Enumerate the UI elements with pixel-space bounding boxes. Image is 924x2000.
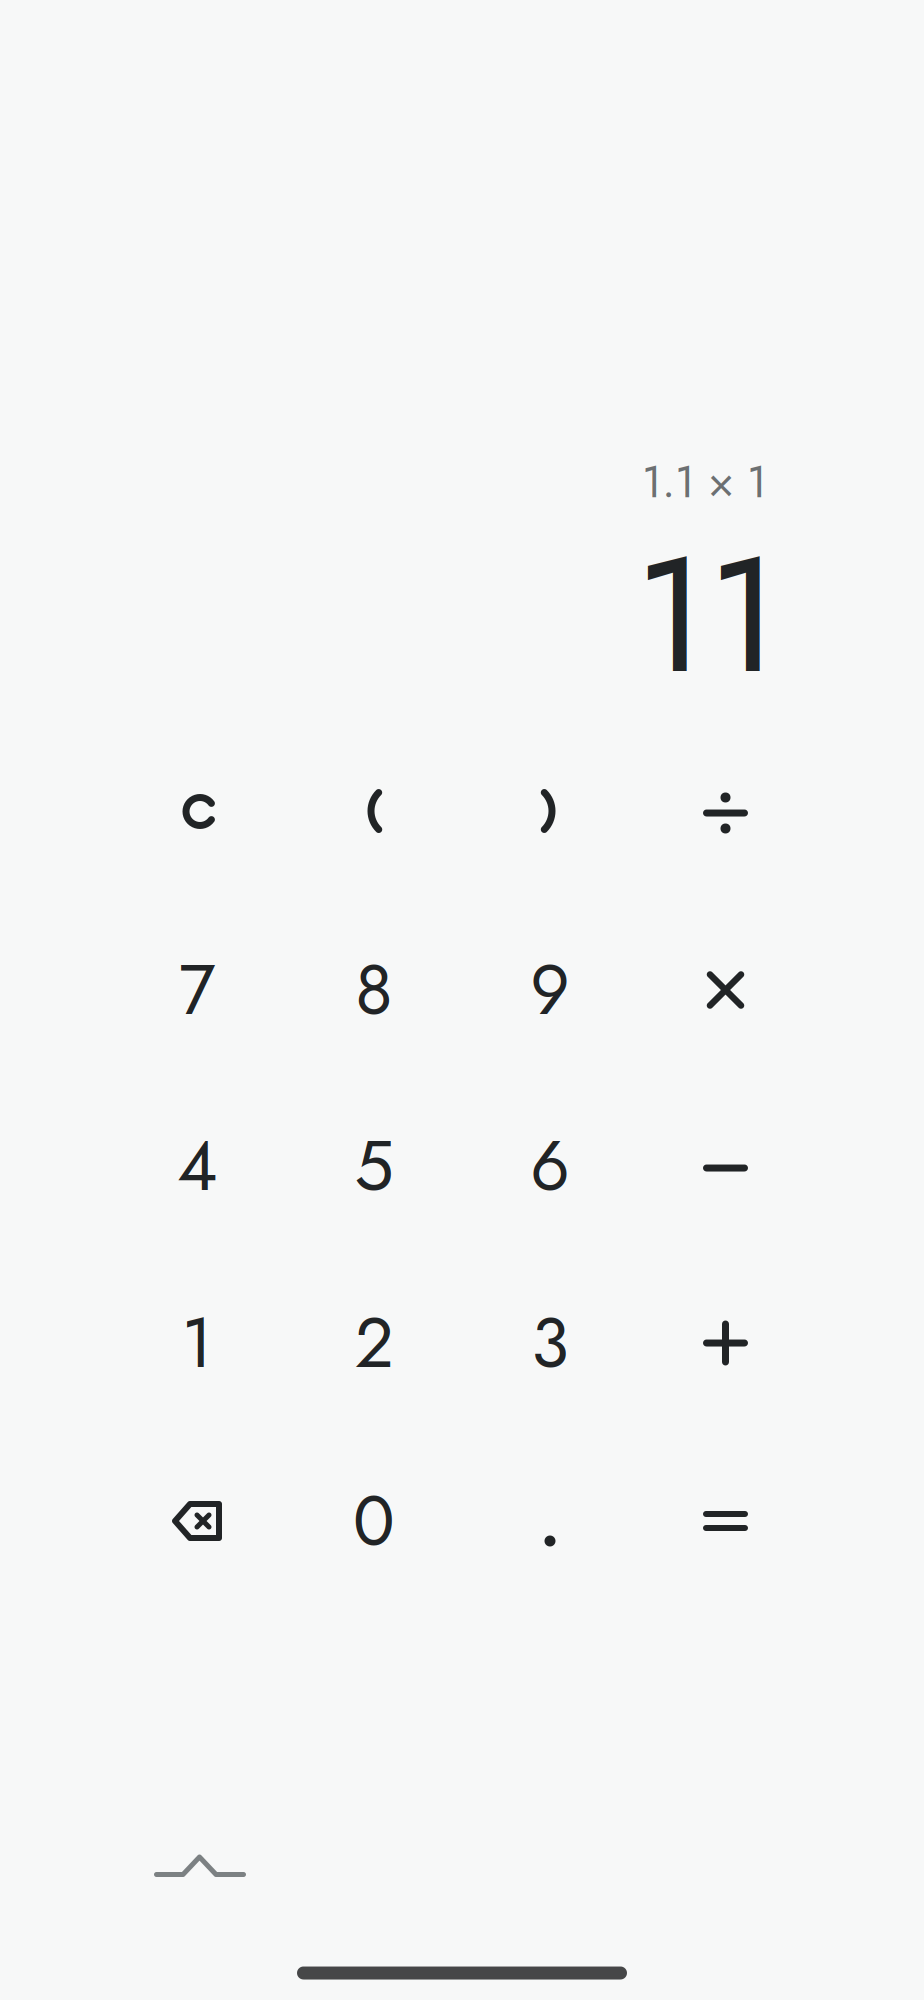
staticText: 3 xyxy=(531,1293,569,1393)
button[interactable]: 6 xyxy=(462,1078,638,1254)
staticText: 7 xyxy=(179,940,215,1040)
button[interactable]: 8 xyxy=(286,902,462,1078)
button[interactable]: Open parenthesis xyxy=(286,723,462,899)
button[interactable]: Decimal point xyxy=(462,1433,638,1609)
staticText: 0 xyxy=(353,1471,395,1571)
staticText: 2 xyxy=(354,1293,393,1393)
button[interactable]: Divide xyxy=(637,723,813,899)
button[interactable]: Clear xyxy=(109,723,285,899)
button[interactable]: Close parenthesis xyxy=(462,723,638,899)
staticText: 1.1 × 1 xyxy=(642,450,767,514)
button[interactable]: Add xyxy=(637,1255,813,1431)
staticText: 4 xyxy=(177,1116,217,1216)
staticText: 5 xyxy=(354,1116,393,1216)
staticText: 8 xyxy=(355,940,393,1040)
button[interactable]: Equals xyxy=(637,1433,813,1609)
button[interactable]: Subtract xyxy=(637,1078,813,1254)
staticText: 1 xyxy=(181,1293,212,1393)
button[interactable]: 0 xyxy=(286,1433,462,1609)
staticText: 9 xyxy=(530,940,570,1040)
button[interactable]: 7 xyxy=(109,902,285,1078)
staticText: 11 xyxy=(635,498,781,731)
button[interactable]: Expand keypad xyxy=(125,1821,275,1911)
staticText: 6 xyxy=(530,1116,570,1216)
button[interactable]: Backspace xyxy=(109,1433,285,1609)
button[interactable]: 3 xyxy=(462,1255,638,1431)
button[interactable]: 1 xyxy=(109,1255,285,1431)
button[interactable]: 5 xyxy=(286,1078,462,1254)
button[interactable]: 9 xyxy=(462,902,638,1078)
button[interactable]: 4 xyxy=(109,1078,285,1254)
button[interactable]: 2 xyxy=(286,1255,462,1431)
button[interactable]: Multiply xyxy=(637,902,813,1078)
